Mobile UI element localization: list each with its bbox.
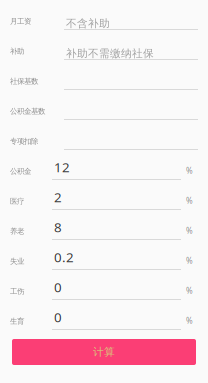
staticText: % [186,165,193,176]
staticText: % [186,285,193,296]
staticText: 8 [54,218,62,236]
staticText: 公积金 [10,167,31,176]
staticText: % [186,195,193,206]
staticText: 计算 [93,345,115,358]
staticText: 2 [54,188,62,206]
staticText: 工伤 [10,287,24,296]
button[interactable]: 计算 [12,339,196,365]
staticText: 0.2 [54,248,74,266]
staticText: 专项扣除 [10,137,38,146]
staticText: 12 [54,158,70,176]
staticText: 失业 [10,257,24,266]
staticText: 不含补助 [66,17,110,30]
staticText: 补助不需缴纳社保 [66,47,154,60]
staticText: 0 [54,308,62,326]
staticText: 养老 [10,227,24,236]
staticText: 生育 [10,317,24,326]
staticText: 社保基数 [10,77,38,86]
staticText: 0 [54,278,62,296]
staticText: 月工资 [10,17,31,26]
staticText: 补助 [10,47,24,56]
staticText: % [186,255,193,266]
staticText: % [186,315,193,326]
staticText: % [186,225,193,236]
staticText: 公积金基数 [10,107,45,116]
staticText: 医疗 [10,197,24,206]
